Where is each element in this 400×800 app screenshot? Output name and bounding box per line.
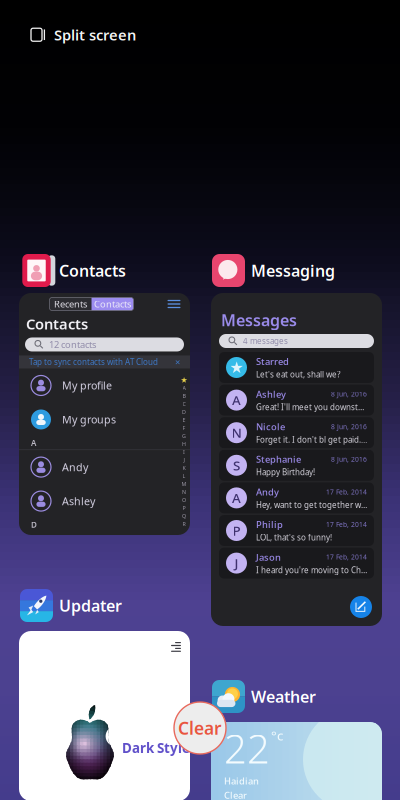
button[interactable]: Filter contacts	[164, 297, 184, 311]
staticText: Happy Birthday!	[256, 467, 315, 477]
staticText: R	[182, 520, 185, 528]
staticText: 4 messages	[243, 336, 288, 346]
button[interactable]: New message	[350, 596, 372, 618]
staticText: Messages	[221, 309, 297, 331]
button[interactable]: N	[219, 417, 374, 448]
staticText: Let's eat out, shall we?	[256, 369, 340, 380]
staticText: ×	[175, 356, 180, 368]
staticText: Nicole	[256, 420, 285, 433]
staticText: H	[182, 440, 186, 448]
staticText: S	[233, 456, 240, 474]
staticText: Jason	[256, 551, 281, 563]
button[interactable]: Ashley	[19, 484, 190, 518]
staticText: °c	[271, 726, 283, 744]
staticText: 8 Jun, 2016	[331, 422, 367, 431]
staticText: 8 Jun, 2016	[331, 455, 367, 464]
staticText: 17 Feb, 2014	[326, 553, 367, 561]
staticText: Q	[182, 512, 186, 520]
staticText: I	[183, 448, 185, 456]
button[interactable]: 12 contacts	[25, 337, 184, 351]
staticText: N	[182, 488, 186, 496]
button[interactable]: P	[219, 515, 374, 546]
staticText: Contacts	[94, 298, 131, 310]
staticText: Ashley	[62, 494, 95, 508]
button[interactable]: My profile	[19, 368, 190, 402]
staticText: Starred	[256, 355, 289, 368]
staticText: M	[181, 480, 186, 488]
staticText: Updater	[59, 595, 122, 616]
staticText: Ashley	[256, 388, 286, 400]
staticText: Contacts	[59, 260, 126, 281]
staticText: LOL, that's so funny!	[256, 532, 332, 543]
staticText: O	[182, 496, 186, 504]
staticText: My profile	[62, 378, 112, 393]
staticText: K	[182, 464, 185, 472]
staticText: Andy	[62, 460, 88, 474]
staticText: A	[182, 384, 185, 392]
button[interactable]: Split screen	[31, 25, 136, 44]
button[interactable]: Weather	[212, 680, 372, 713]
staticText: 22	[224, 721, 270, 775]
staticText: Forget it. I don't bl get paid. until ne…	[256, 434, 367, 445]
staticText: N	[231, 424, 241, 441]
staticText: B	[182, 392, 185, 400]
button[interactable]: Messaging	[212, 254, 372, 287]
button[interactable]: Updater	[20, 589, 180, 622]
staticText: Recents	[54, 298, 87, 310]
staticText: Split screen	[54, 25, 136, 44]
button[interactable]: A	[219, 482, 374, 513]
staticText: L	[182, 472, 185, 480]
button[interactable]: S	[219, 450, 374, 481]
staticText: Clear	[224, 789, 247, 800]
button[interactable]: Contacts	[20, 254, 180, 287]
button[interactable]: J	[219, 548, 374, 579]
staticText: P	[182, 504, 185, 512]
staticText: A	[31, 438, 36, 448]
staticText: J	[234, 554, 238, 572]
staticText: Haidian	[224, 775, 259, 787]
staticText: ★	[180, 375, 187, 385]
button[interactable]: My groups	[19, 402, 190, 436]
staticText: Great! I'll meet you downstairs in ten …	[256, 402, 367, 412]
staticText: I heard you're moving to China.	[256, 565, 367, 575]
button[interactable]: Clear	[174, 702, 226, 754]
staticText: C	[182, 400, 185, 408]
staticText: Hey, want to get together with Nicole …	[256, 499, 367, 510]
button[interactable]: Recents	[49, 297, 133, 310]
staticText: ★	[229, 358, 243, 377]
staticText: 12 contacts	[49, 338, 96, 351]
staticText: Stephanie	[256, 453, 301, 465]
staticText: Philip	[256, 518, 283, 531]
staticText: D	[182, 408, 186, 416]
staticText: 8 Jun, 2016	[331, 390, 367, 398]
button[interactable]: Andy	[19, 450, 190, 484]
staticText: Clear	[178, 716, 222, 739]
button[interactable]: Tap to sync contacts with AT Cloud	[19, 355, 190, 368]
staticText: 17 Feb, 2014	[326, 487, 367, 496]
staticText: Weather	[251, 686, 316, 707]
button[interactable]: ★	[219, 352, 374, 383]
staticText: Dark Style	[122, 739, 190, 757]
staticText: G	[182, 432, 186, 440]
staticText: 17 Feb, 2014	[326, 520, 367, 529]
staticText: Andy	[256, 486, 279, 498]
staticText: F	[182, 424, 185, 432]
staticText: A	[232, 391, 241, 409]
staticText: E	[182, 416, 185, 424]
button[interactable]: A	[219, 385, 374, 416]
staticText: Contacts	[26, 314, 88, 333]
staticText: P	[232, 522, 240, 539]
staticText: Messaging	[251, 260, 335, 281]
staticText: A	[232, 489, 241, 507]
staticText: My groups	[62, 412, 116, 427]
button[interactable]: 4 messages	[219, 334, 374, 348]
staticText: D	[31, 519, 37, 530]
staticText: Tap to sync contacts with AT Cloud	[29, 357, 158, 367]
